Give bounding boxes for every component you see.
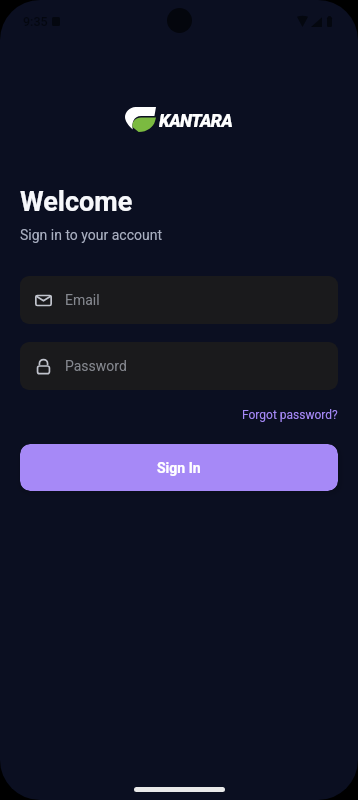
button[interactable]: Password	[20, 342, 338, 390]
staticText: Email	[65, 292, 100, 308]
staticText: Forgot password?	[242, 408, 338, 422]
button[interactable]: Sign In	[20, 444, 338, 491]
button[interactable]: Email	[20, 276, 338, 324]
staticText: KANTARA	[159, 111, 233, 132]
staticText: Password	[65, 358, 127, 374]
button[interactable]: Forgot password?	[242, 404, 338, 426]
staticText: 9:35	[23, 14, 48, 29]
staticText: Sign in to your account	[20, 227, 163, 243]
staticText: Sign In	[157, 460, 201, 476]
staticText: Welcome	[20, 186, 133, 218]
